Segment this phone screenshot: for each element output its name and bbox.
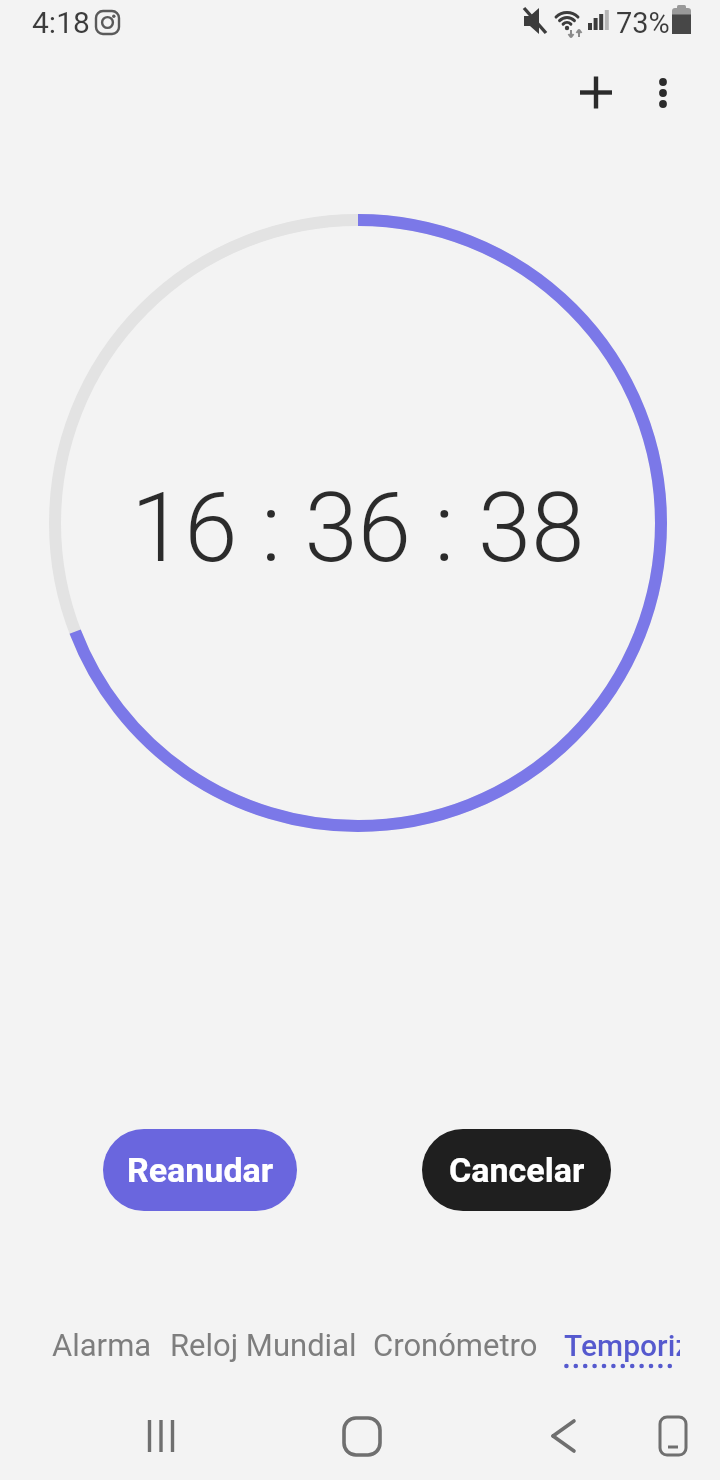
button[interactable]: Temporizador [564, 1321, 680, 1369]
button[interactable] [637, 1400, 709, 1472]
staticText: Alarma [52, 1327, 152, 1363]
staticText: Reanudar [127, 1150, 274, 1190]
staticText: Cancelar [449, 1150, 585, 1190]
button[interactable]: Alarma [7, 1321, 197, 1369]
button[interactable] [527, 1400, 599, 1472]
button[interactable] [572, 68, 620, 116]
button[interactable] [639, 68, 687, 116]
staticText: Temporizador [564, 1328, 680, 1363]
staticText: 16 : 36 : 38 [131, 472, 585, 585]
button[interactable]: Cancelar [422, 1129, 611, 1211]
staticText: 73% [616, 6, 670, 40]
staticText: 4:18 [32, 5, 90, 40]
button[interactable]: Cronómetro [360, 1321, 550, 1369]
button[interactable]: Reanudar [103, 1129, 297, 1211]
button[interactable]: Reloj Mundial [168, 1321, 358, 1369]
staticText: Reloj Mundial [170, 1327, 357, 1363]
staticText: Cronómetro [373, 1327, 538, 1363]
button[interactable] [125, 1400, 197, 1472]
button[interactable] [326, 1400, 398, 1472]
